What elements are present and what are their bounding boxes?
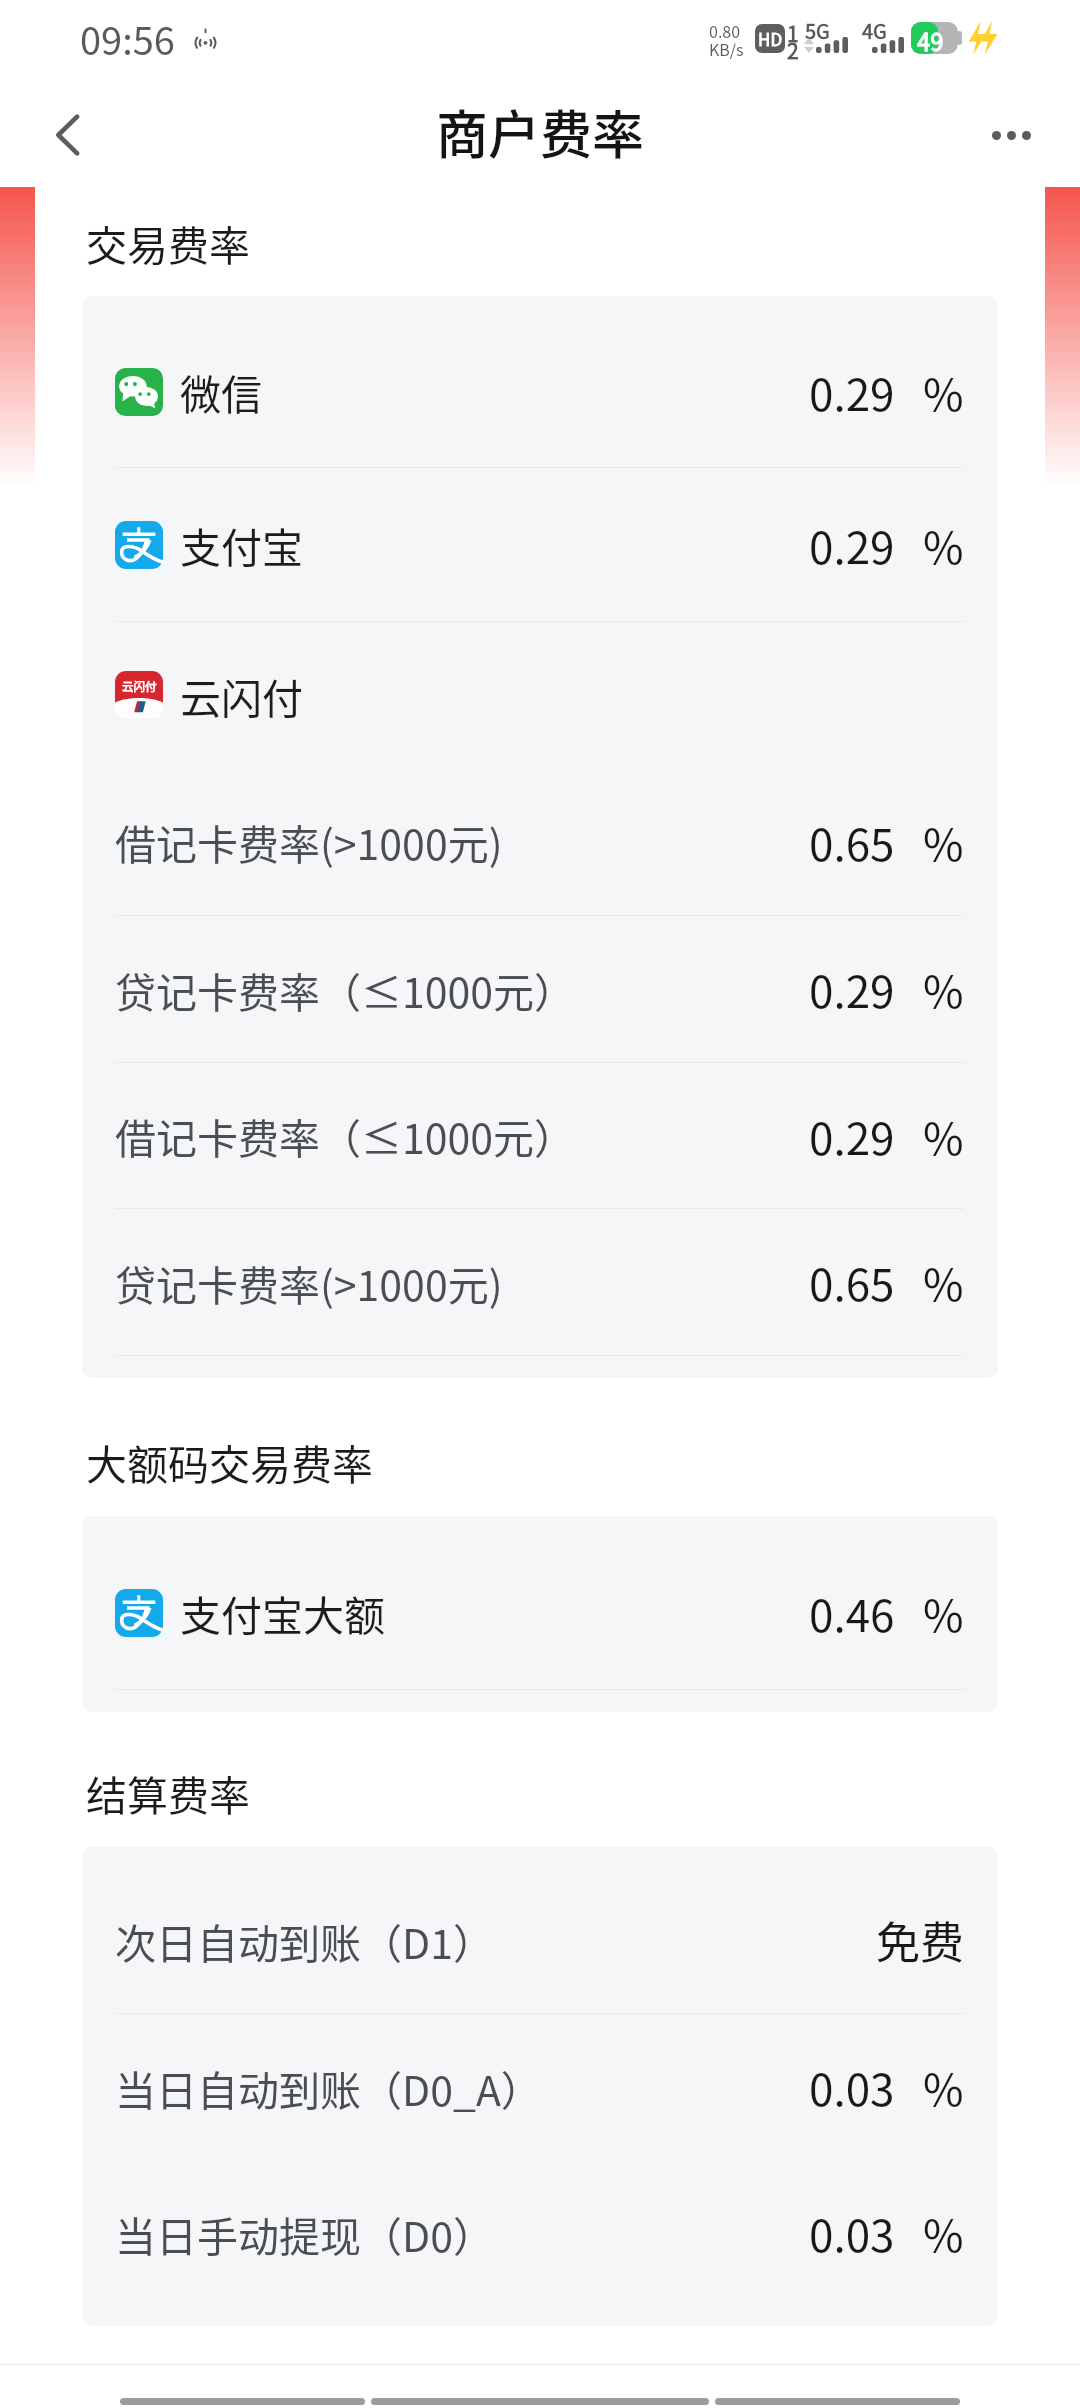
staticText: 贷记卡费率（≤1000元） [115,960,576,1019]
staticText: 微信 [180,362,262,421]
staticText: 0.65 [809,1250,895,1314]
staticText: 次日自动到账（D1） [115,1911,494,1970]
staticText: 免费 [876,1908,964,1972]
staticText: 1 [787,18,799,48]
staticText: 贷记卡费率(>1000元) [115,1253,503,1312]
staticText: 0.80 [709,19,741,42]
staticText: % [923,810,964,874]
staticText: 当日手动提现（D0） [115,2204,494,2263]
staticText: % [923,2201,964,2265]
button[interactable]: 当日手动提现（D0） [82,2160,998,2306]
staticText: 2 [787,35,799,65]
staticText: % [923,513,964,577]
button[interactable]: Back [120,2398,365,2405]
staticText: 0.29 [809,957,895,1021]
staticText: 09:56 [80,11,175,66]
button[interactable]: 支付宝大额 [82,1536,998,1689]
staticText: % [923,1250,964,1314]
staticText: 0.46 [809,1581,895,1645]
staticText: 0.03 [809,2055,895,2119]
button[interactable]: More options [956,80,1066,190]
button[interactable]: 借记卡费率(>1000元) [82,768,998,915]
staticText: 结算费率 [86,1763,250,1822]
staticText: 5G [805,16,830,45]
button[interactable]: Recent apps [715,2398,960,2405]
button[interactable]: 当日自动到账（D0_A） [82,2014,998,2160]
staticText: 支付宝大额 [180,1583,385,1642]
button[interactable]: 云闪付 [82,622,998,768]
staticText: KB/s [709,37,744,60]
staticText: 0.29 [809,1104,895,1168]
staticText: % [923,1581,964,1645]
staticText: 云闪付 [122,678,157,695]
staticText: % [923,1104,964,1168]
staticText: % [923,360,964,424]
button[interactable]: 微信 [82,316,998,467]
staticText: 支付宝 [180,515,303,574]
staticText: 0.29 [809,360,895,424]
button[interactable]: 支付宝 [82,468,998,621]
button[interactable]: Back [12,80,122,190]
staticText: % [923,957,964,1021]
button[interactable]: 借记卡费率（≤1000元） [82,1063,998,1208]
staticText: 借记卡费率（≤1000元） [115,1106,576,1165]
button[interactable]: 次日自动到账（D1） [82,1867,998,2013]
staticText: 0.29 [809,513,895,577]
staticText: 借记卡费率(>1000元) [115,812,503,871]
staticText: 商户费率 [436,94,645,169]
staticText: 大额码交易费率 [86,1432,373,1491]
staticText: HD [758,26,783,51]
button[interactable]: 贷记卡费率（≤1000元） [82,916,998,1062]
staticText: 0.03 [809,2201,895,2265]
button[interactable]: 贷记卡费率(>1000元) [82,1209,998,1355]
button[interactable]: Home [371,2398,709,2405]
staticText: 0.65 [809,810,895,874]
staticText: 4G [862,16,887,45]
staticText: 云闪付 [180,666,303,725]
staticText: % [923,2055,964,2119]
staticText: 49 [917,23,944,58]
staticText: 交易费率 [86,213,250,272]
staticText: 当日自动到账（D0_A） [115,2058,542,2117]
